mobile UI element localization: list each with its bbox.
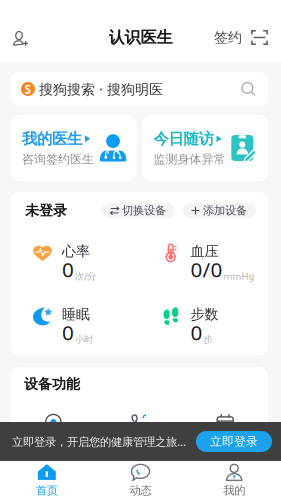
button[interactable]: 我的医生 bbox=[11, 115, 136, 181]
staticText: 咨询签约医生 bbox=[22, 152, 94, 167]
staticText: 动态 bbox=[129, 483, 151, 498]
staticText: 今日随访 bbox=[153, 129, 213, 149]
button[interactable]: 立即登录 bbox=[196, 431, 272, 452]
staticText: 次/分 bbox=[75, 270, 96, 282]
button[interactable]: S bbox=[11, 72, 268, 106]
staticText: 我的医生 bbox=[22, 129, 82, 149]
staticText: 0/0 bbox=[190, 255, 222, 283]
staticText: mmHg bbox=[223, 270, 254, 282]
staticText: 小时 bbox=[75, 334, 93, 345]
staticText: 立即登录 bbox=[210, 434, 258, 449]
staticText: 0 bbox=[62, 255, 74, 283]
button[interactable]: 切换设备 bbox=[102, 203, 175, 218]
staticText: 我的 bbox=[223, 483, 245, 498]
staticText: 搜狗搜索 · 搜狗明医 bbox=[39, 79, 163, 99]
button[interactable]: 设备功能 bbox=[97, 412, 182, 432]
staticText: 设备功能 bbox=[24, 375, 80, 393]
staticText: 添加设备 bbox=[203, 203, 247, 218]
staticText: 心率 bbox=[62, 243, 90, 260]
button[interactable]: 心率 bbox=[11, 229, 139, 292]
button[interactable]: 动态 bbox=[94, 460, 187, 500]
staticText: 切换设备 bbox=[122, 203, 166, 218]
staticText: 首页 bbox=[36, 483, 58, 498]
staticText: 血压 bbox=[190, 243, 218, 260]
staticText: 睡眠 bbox=[62, 306, 90, 323]
staticText: 签约 bbox=[214, 29, 242, 46]
staticText: 0 bbox=[190, 318, 202, 346]
staticText: 监测身体异常 bbox=[153, 152, 225, 167]
staticText: 立即登录，开启您的健康管理之旅... bbox=[12, 434, 186, 449]
staticText: S bbox=[24, 81, 31, 97]
button[interactable]: 血压 bbox=[139, 229, 268, 292]
button[interactable]: 签约 bbox=[206, 22, 251, 52]
button[interactable]: 今日随访 bbox=[142, 115, 268, 181]
button[interactable]: 睡眠 bbox=[11, 292, 139, 355]
staticText: 未登录 bbox=[25, 202, 67, 219]
button[interactable]: 设备功能 bbox=[182, 412, 268, 432]
staticText: 步数 bbox=[190, 306, 218, 323]
button[interactable]: 添加好友 bbox=[0, 21, 38, 53]
staticText: 步 bbox=[203, 334, 212, 345]
staticText: 0 bbox=[62, 318, 74, 346]
button[interactable]: 首页 bbox=[0, 460, 94, 500]
button[interactable]: 设备功能 bbox=[11, 412, 97, 432]
button[interactable]: 添加设备 bbox=[183, 203, 256, 218]
button[interactable]: 扫一扫 bbox=[251, 22, 281, 52]
button[interactable]: 步数 bbox=[139, 292, 268, 355]
staticText: 认识医生 bbox=[108, 27, 172, 48]
button[interactable]: 我的 bbox=[187, 460, 281, 500]
